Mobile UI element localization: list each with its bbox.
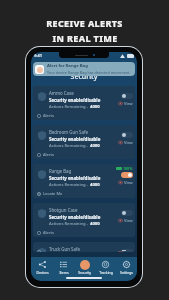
staticText: 4000: [90, 221, 100, 227]
button[interactable]: Alerts: [35, 113, 54, 120]
staticText: View: [124, 180, 133, 185]
button[interactable]: View: [118, 140, 133, 145]
staticText: 100%: [123, 166, 133, 171]
button[interactable]: Locate Me: [35, 191, 63, 198]
staticText: Items: [59, 270, 69, 275]
staticText: Actions Remaining -: [49, 221, 90, 227]
staticText: Alerts: [43, 152, 54, 157]
button[interactable]: Ammo Case: [33, 86, 135, 120]
button[interactable]: Bedroom Gun Safe: [33, 125, 135, 159]
button[interactable]: View: [118, 180, 133, 185]
staticText: Truck Gun Safe: [49, 246, 80, 252]
staticText: View: [124, 101, 133, 106]
button[interactable]: Toggle security: [121, 172, 133, 178]
staticText: Bedroom Gun Safe: [49, 129, 88, 135]
button[interactable]: Range Bag: [33, 164, 135, 198]
button[interactable]: Items: [53, 258, 74, 276]
button[interactable]: Alerts: [35, 230, 54, 237]
staticText: Actions Remaining -: [49, 182, 90, 188]
staticText: Devices: [36, 270, 49, 275]
staticText: Security: [78, 270, 91, 275]
staticText: 4000: [90, 143, 100, 149]
staticText: Actions Remaining -: [49, 104, 90, 110]
button[interactable]: Settings: [116, 258, 136, 276]
button[interactable]: Alerts: [35, 152, 54, 159]
staticText: Security enable/disable: [49, 175, 101, 181]
button[interactable]: View: [118, 101, 133, 106]
staticText: Alerts: [43, 113, 54, 118]
button[interactable]: Toggle security: [121, 210, 133, 216]
staticText: 4000: [90, 104, 100, 110]
button[interactable]: Tracking: [95, 258, 116, 276]
button[interactable]: Security: [74, 258, 95, 276]
staticText: Ammo Case: [49, 90, 74, 96]
staticText: Range Bag: [49, 168, 72, 174]
button[interactable]: View: [118, 218, 133, 223]
button[interactable]: Toggle security: [121, 249, 133, 252]
button[interactable]: Truck Gun Safe: [33, 242, 135, 252]
staticText: Security enable/disable: [49, 136, 101, 142]
staticText: Shotgun Case: [49, 207, 78, 213]
button[interactable]: Shotgun Case: [33, 203, 135, 237]
staticText: Your device Range Bag has detected movem…: [47, 70, 130, 75]
staticText: Actions Remaining -: [49, 143, 90, 149]
staticText: Alerts: [43, 230, 54, 235]
staticText: Security enable/disable: [49, 214, 101, 220]
staticText: View: [124, 140, 133, 145]
staticText: View: [124, 218, 133, 223]
staticText: Locate Me: [43, 191, 63, 196]
staticText: IN REAL TIME: [52, 32, 118, 44]
staticText: Security enable/disable: [49, 97, 101, 103]
staticText: Security: [31, 72, 137, 82]
button[interactable]: Toggle security: [121, 93, 133, 99]
button[interactable]: Alert for Range Bag: [33, 62, 135, 76]
button[interactable]: Toggle security: [121, 132, 133, 138]
button[interactable]: Devices: [32, 258, 53, 276]
staticText: Settings: [120, 270, 133, 275]
staticText: Alert for Range Bag: [47, 63, 88, 69]
staticText: 9:41: [34, 53, 42, 58]
staticText: RECEIVE ALERTS: [46, 17, 123, 29]
staticText: 4000: [90, 182, 100, 188]
staticText: Tracking: [99, 270, 113, 275]
